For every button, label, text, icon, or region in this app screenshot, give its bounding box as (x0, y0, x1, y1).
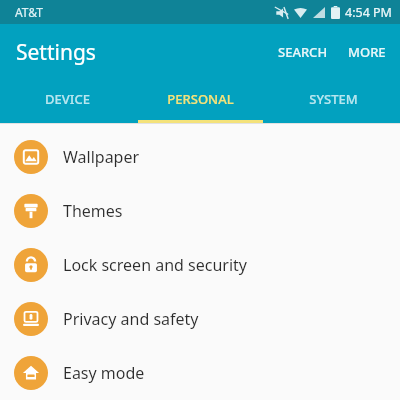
staticText: Lock screen and security (63, 254, 247, 276)
staticText: Easy mode (63, 362, 145, 384)
staticText: SEARCH (278, 43, 328, 61)
staticText: SYSTEM (309, 90, 358, 108)
button[interactable]: Themes (0, 184, 400, 238)
button[interactable]: Lock screen and security (0, 238, 400, 292)
button[interactable]: DEVICE (0, 80, 134, 123)
button[interactable]: MORE (338, 31, 400, 73)
staticText: MORE (348, 43, 386, 61)
staticText: Wallpaper (63, 146, 140, 168)
staticText: PERSONAL (167, 90, 234, 108)
button[interactable]: Easy mode (0, 346, 400, 400)
button[interactable]: SYSTEM (267, 80, 400, 123)
staticText: 4:54 PM (345, 4, 392, 21)
button[interactable]: PERSONAL (134, 80, 267, 123)
button[interactable]: SEARCH (268, 31, 338, 73)
button[interactable]: Privacy and safety (0, 292, 400, 346)
staticText: DEVICE (45, 90, 90, 108)
staticText: Themes (63, 200, 123, 222)
staticText: Settings (16, 38, 96, 67)
button[interactable]: Wallpaper (0, 130, 400, 184)
staticText: AT&T (15, 4, 43, 20)
staticText: Privacy and safety (63, 308, 199, 330)
